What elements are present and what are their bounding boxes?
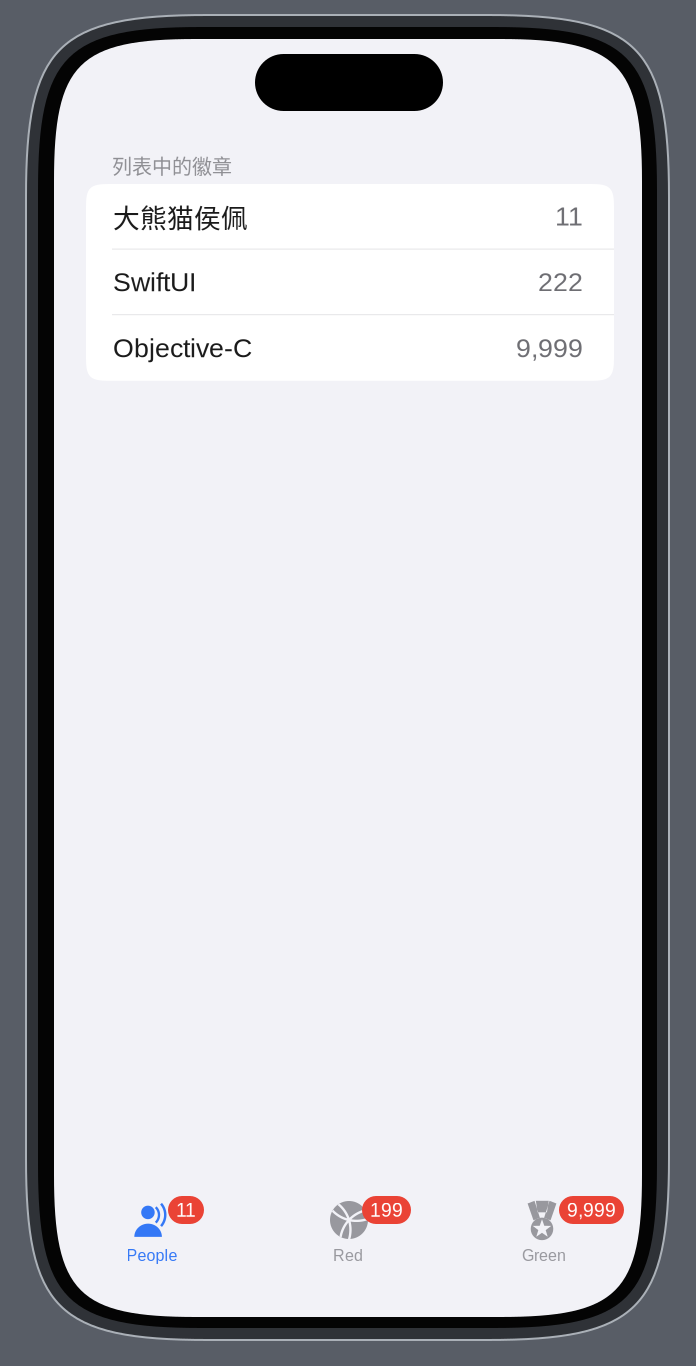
button[interactable]: 11 — [54, 1196, 250, 1264]
staticText: People — [126, 1247, 177, 1264]
button[interactable]: Objective-C — [86, 315, 614, 381]
staticText: SwiftUI — [113, 267, 196, 297]
staticText: Red — [333, 1247, 363, 1264]
staticText: 大熊猫侯佩 — [113, 197, 248, 236]
button[interactable]: SwiftUI — [86, 250, 614, 315]
staticText: Green — [522, 1247, 566, 1264]
staticText: 11 — [555, 201, 583, 231]
staticText: 199 — [370, 1199, 403, 1221]
staticText: 222 — [538, 267, 583, 297]
button[interactable]: 9,999 — [446, 1196, 642, 1264]
staticText: 9,999 — [516, 333, 583, 363]
staticText: Objective-C — [113, 333, 252, 363]
staticText: 9,999 — [567, 1199, 616, 1221]
staticText: 列表中的徽章 — [112, 151, 232, 180]
button[interactable]: 199 — [250, 1196, 446, 1264]
staticText: 11 — [176, 1199, 196, 1221]
button[interactable]: 大熊猫侯佩 — [86, 184, 614, 250]
